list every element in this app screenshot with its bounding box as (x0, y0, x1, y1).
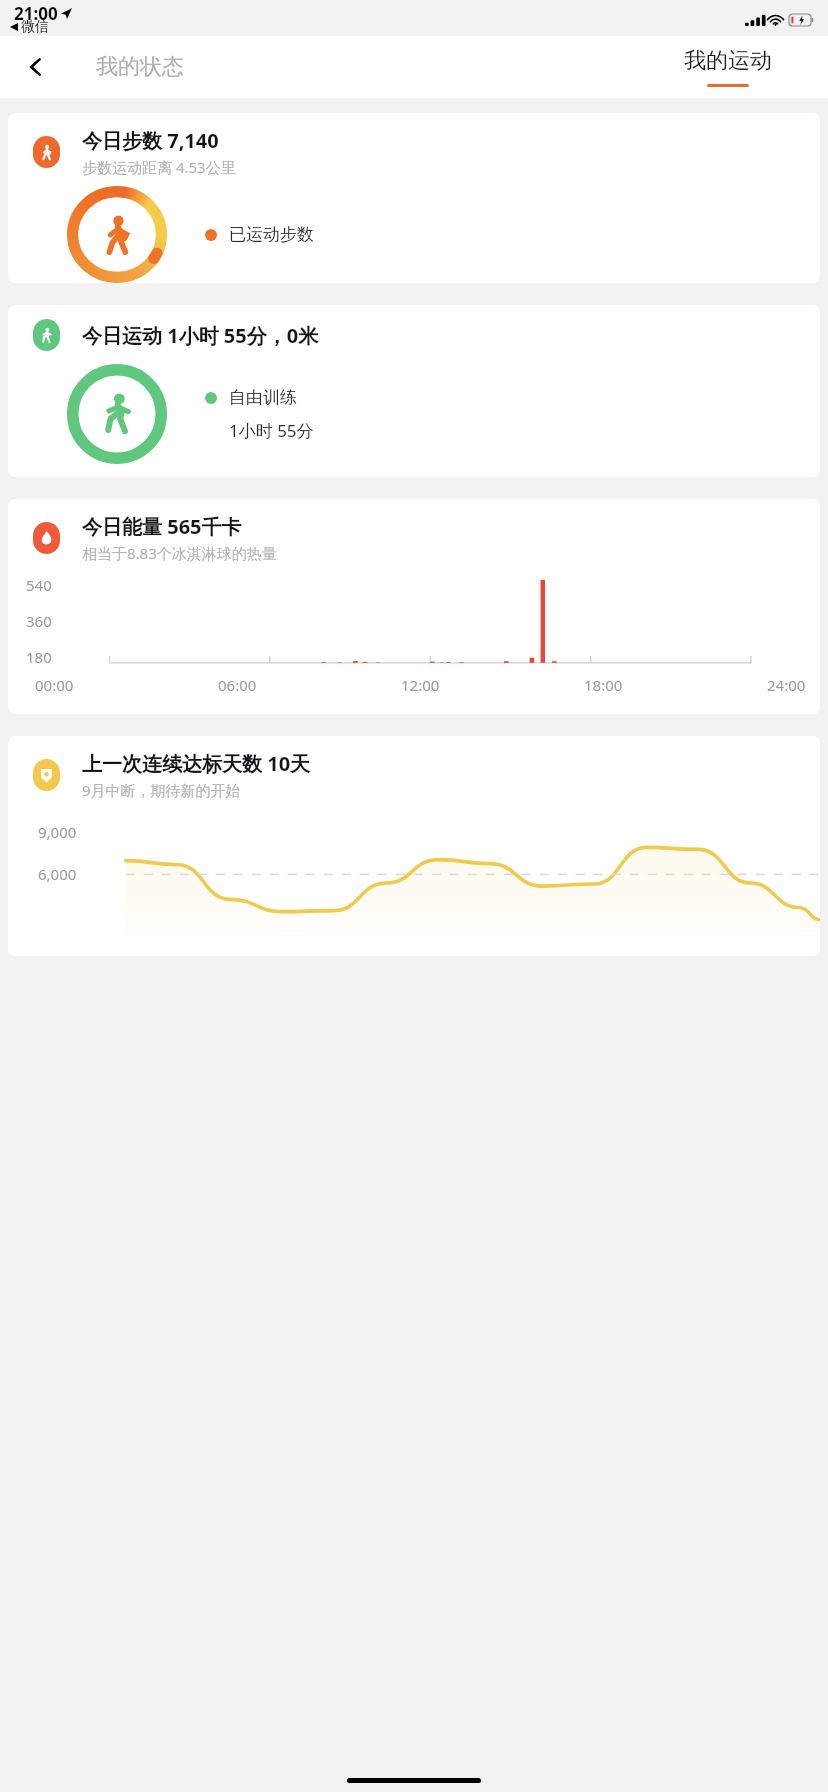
staticText: 我的状态 (96, 53, 184, 81)
button[interactable]: 今日能量 565千卡 (8, 499, 820, 714)
staticText: 已运动步数 (229, 224, 314, 245)
staticText: 6,000 (38, 864, 77, 884)
staticText: 我的运动 (684, 47, 772, 75)
staticText: 00:00 (35, 675, 74, 695)
staticText: 微信 (21, 18, 49, 36)
button[interactable]: 我的运动 (684, 36, 772, 98)
staticText: 21:00 (14, 2, 58, 25)
button[interactable]: 上一次连续达标天数 10天 (8, 736, 820, 956)
staticText: 540 (26, 575, 52, 595)
staticText: 今日运动 1小时 55分，0米 (82, 322, 319, 349)
staticText: 360 (26, 611, 52, 631)
button[interactable]: 今日步数 7,140 (8, 113, 820, 283)
staticText: 今日能量 565千卡 (82, 513, 242, 540)
staticText: 步数运动距离 4.53公里 (82, 157, 236, 177)
button[interactable]: Back (14, 45, 58, 89)
staticText: 相当于8.83个冰淇淋球的热量 (82, 543, 277, 563)
button[interactable]: 我的状态 (96, 36, 184, 98)
staticText: 12:00 (401, 675, 440, 695)
staticText: 9,000 (38, 822, 77, 842)
staticText: 自由训练 (229, 387, 297, 408)
staticText: 今日步数 7,140 (82, 127, 219, 154)
button[interactable]: 今日运动 1小时 55分，0米 (8, 305, 820, 477)
staticText: 180 (26, 647, 52, 667)
button[interactable]: 微信 (10, 18, 49, 36)
staticText: 18:00 (584, 675, 623, 695)
staticText: 1小时 55分 (229, 419, 314, 442)
staticText: 9月中断，期待新的开始 (82, 780, 241, 800)
staticText: 24:00 (767, 675, 806, 695)
staticText: 06:00 (218, 675, 257, 695)
staticText: 上一次连续达标天数 10天 (82, 750, 311, 777)
